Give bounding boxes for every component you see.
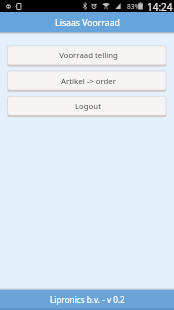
- button[interactable]: Artikel -> order: [7, 71, 167, 92]
- button[interactable]: Lisaas Voorraad: [0, 12, 174, 32]
- staticText: Logout: [75, 101, 101, 112]
- other: Bluetooth: [82, 2, 88, 10]
- other: Battery: [138, 2, 143, 10]
- button[interactable]: Voorraad telling: [7, 45, 167, 66]
- staticText: 14:24: [147, 0, 173, 12]
- staticText: Artikel -> order: [61, 76, 116, 87]
- staticText: Lisaas Voorraad: [55, 17, 120, 29]
- staticText: Lipronics b.v. - v 0.2: [50, 294, 125, 305]
- other: Notification: [6, 4, 11, 9]
- button[interactable]: Logout: [7, 96, 167, 117]
- other: Screen rotation: [15, 3, 21, 10]
- staticText: Voorraad telling: [59, 50, 118, 61]
- other: Alarm set: [91, 2, 97, 10]
- other: Wi-Fi: [102, 2, 110, 10]
- staticText: 83%: [127, 2, 140, 11]
- button[interactable]: Lipronics b.v. - v 0.2: [0, 290, 174, 310]
- other: Mobile signal: [115, 2, 121, 10]
